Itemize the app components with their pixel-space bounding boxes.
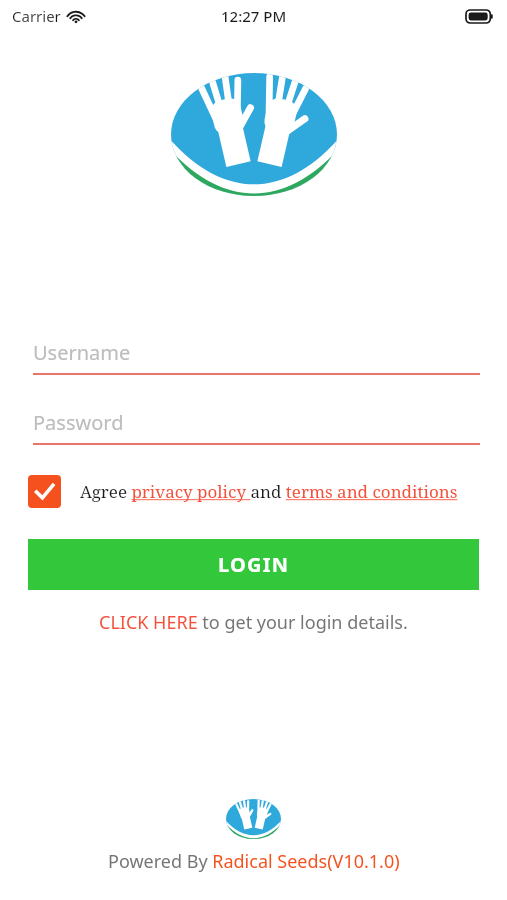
staticText: Password <box>33 409 124 436</box>
staticText: 12:27 PM <box>221 6 287 26</box>
button[interactable]: Password <box>33 404 480 445</box>
button[interactable]: Agree privacy policy and terms and condi… <box>80 480 458 503</box>
staticText: CLICK HERE to get your login details. <box>99 610 408 635</box>
button[interactable]: CLICK HERE to get your login details. <box>95 608 412 637</box>
staticText: Powered By Radical Seeds(V10.1.0) <box>108 849 400 874</box>
staticText: Carrier <box>12 6 61 26</box>
button[interactable]: Agree to terms checkbox <box>28 475 61 508</box>
staticText: LOGIN <box>218 551 290 578</box>
button[interactable]: Username <box>33 334 480 375</box>
button[interactable]: LOGIN <box>28 539 479 590</box>
staticText: Username <box>33 339 131 366</box>
staticText: Agree privacy policy and terms and condi… <box>80 480 458 503</box>
